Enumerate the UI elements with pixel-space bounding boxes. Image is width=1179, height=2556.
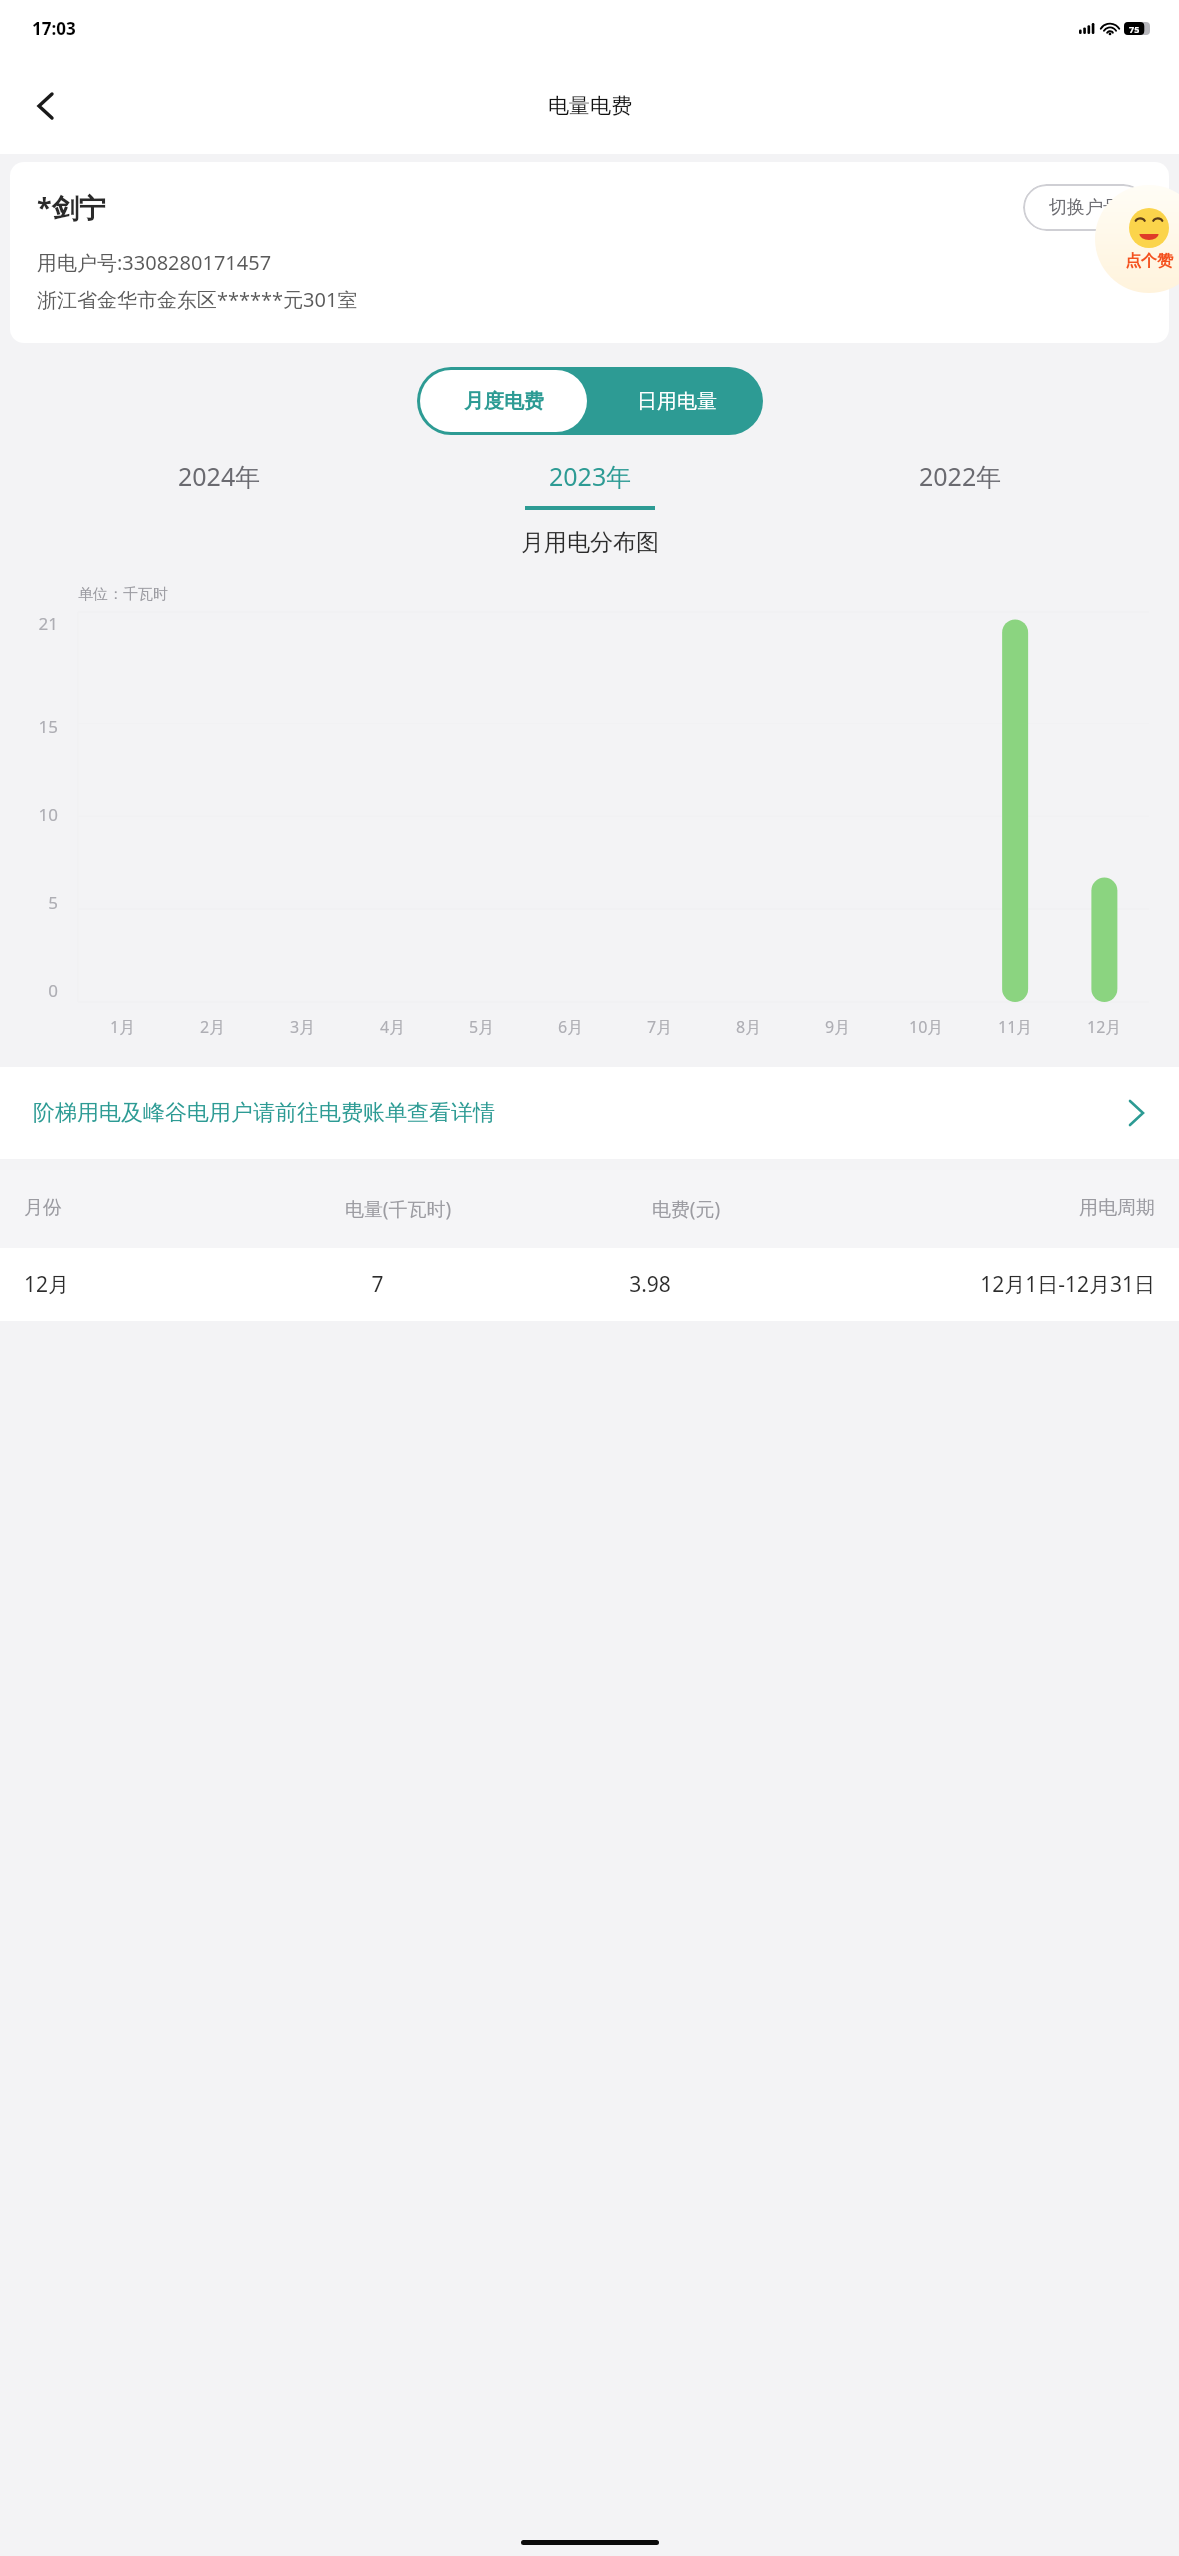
staticText: 切换户号 bbox=[1049, 196, 1121, 219]
staticText: 电量电费 bbox=[548, 93, 632, 119]
staticText: 2023年 bbox=[549, 459, 632, 493]
staticText: 21 bbox=[0, 612, 58, 635]
staticText: 8月 bbox=[736, 1016, 762, 1038]
staticText: 1月 bbox=[110, 1016, 136, 1038]
staticText: 2月 bbox=[200, 1016, 226, 1038]
button[interactable]: 日用电量 bbox=[590, 367, 763, 435]
button[interactable]: Back bbox=[18, 79, 72, 133]
staticText: 点个赞 bbox=[1125, 251, 1173, 271]
button[interactable]: *剑宁 bbox=[10, 162, 1169, 343]
staticText: 5 bbox=[0, 891, 58, 914]
staticText: 6月 bbox=[558, 1016, 584, 1038]
staticText: 月用电分布图 bbox=[521, 528, 659, 557]
staticText: 单位：千瓦时 bbox=[78, 585, 168, 604]
staticText: 日用电量 bbox=[637, 389, 717, 414]
staticText: 7月 bbox=[647, 1016, 673, 1038]
staticText: 15 bbox=[0, 715, 58, 738]
button[interactable]: 点个赞 bbox=[1095, 185, 1179, 293]
staticText: 2024年 bbox=[178, 459, 261, 493]
button[interactable]: 阶梯用电及峰谷电用户请前往电费账单查看详情 bbox=[0, 1067, 1179, 1159]
staticText: 用电周期 bbox=[814, 1196, 1155, 1220]
staticText: 0 bbox=[0, 979, 58, 1002]
staticText: 3.98 bbox=[529, 1270, 771, 1299]
staticText: 浙江省金华市金东区******元301室 bbox=[37, 286, 358, 313]
staticText: *剑宁 bbox=[37, 189, 106, 226]
staticText: 17:03 bbox=[32, 17, 76, 40]
staticText: 10月 bbox=[909, 1016, 944, 1038]
staticText: 10 bbox=[0, 803, 58, 826]
staticText: 月份 bbox=[24, 1196, 238, 1220]
button[interactable]: 2024年 bbox=[34, 459, 405, 510]
staticText: 75 bbox=[1129, 23, 1140, 35]
button[interactable]: 切换户号 bbox=[1023, 184, 1147, 231]
button[interactable]: 2023年 bbox=[405, 459, 775, 510]
staticText: 用电户号:3308280171457 bbox=[37, 249, 272, 276]
staticText: 12月 bbox=[24, 1270, 226, 1299]
button[interactable]: 12月 bbox=[0, 1248, 1179, 1321]
staticText: 11月 bbox=[998, 1016, 1033, 1038]
staticText: 9月 bbox=[825, 1016, 851, 1038]
staticText: 电费(元) bbox=[558, 1196, 814, 1222]
button[interactable]: 2022年 bbox=[775, 459, 1145, 510]
button[interactable]: 月度电费 bbox=[420, 370, 587, 432]
staticText: 12月 bbox=[1087, 1016, 1122, 1038]
staticText: 5月 bbox=[469, 1016, 495, 1038]
staticText: 2022年 bbox=[919, 459, 1002, 493]
staticText: 4月 bbox=[380, 1016, 406, 1038]
staticText: 月度电费 bbox=[464, 389, 544, 414]
staticText: 3月 bbox=[290, 1016, 316, 1038]
staticText: 电量(千瓦时) bbox=[238, 1196, 558, 1222]
staticText: 12月1日-12月31日 bbox=[771, 1270, 1155, 1299]
staticText: 7 bbox=[226, 1270, 529, 1299]
staticText: 阶梯用电及峰谷电用户请前往电费账单查看详情 bbox=[33, 1099, 495, 1127]
